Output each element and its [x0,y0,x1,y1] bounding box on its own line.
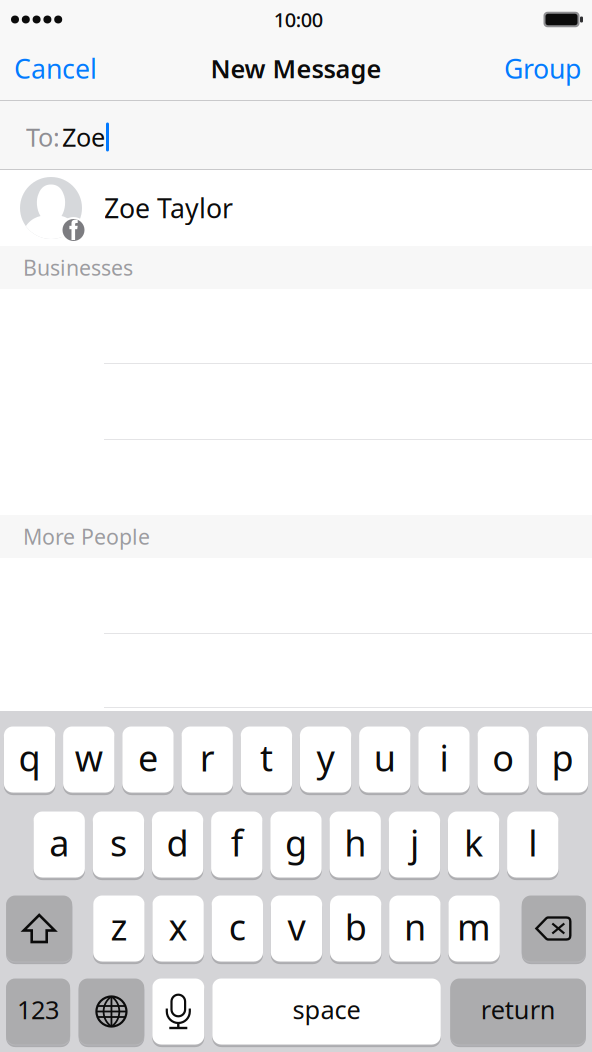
staticText: space [293,993,361,1026]
staticText: o [492,734,514,781]
button[interactable]: e [122,725,174,793]
button[interactable]: Dictation [152,977,204,1045]
staticText: i [439,734,448,781]
staticText: m [457,903,491,950]
button[interactable]: w [63,725,114,793]
button[interactable]: y [300,725,351,793]
button[interactable]: Next keyboard [79,977,144,1045]
staticText: f [231,819,243,866]
staticText: y [317,734,335,781]
staticText: 10:00 [274,6,323,33]
button[interactable]: Zoe Taylor [0,170,592,246]
staticText: e [138,734,158,781]
button[interactable]: Group [492,39,592,98]
button[interactable]: h [329,810,381,878]
staticText: s [110,819,127,866]
staticText: p [551,734,573,781]
staticText: u [374,734,396,781]
staticText: Zoe Taylor [104,190,233,226]
button[interactable]: l [507,810,558,878]
button[interactable]: u [359,725,410,793]
button[interactable]: q [4,725,55,793]
button[interactable]: p [537,725,588,793]
button[interactable]: Shift [6,894,72,962]
staticText: w [75,734,103,781]
button[interactable]: s [93,810,144,878]
button[interactable]: Delete [522,894,586,962]
button[interactable]: t [241,725,292,793]
button[interactable]: j [389,810,440,878]
staticText: b [345,903,367,950]
button[interactable]: z [93,894,145,962]
button[interactable]: k [448,810,499,878]
button[interactable]: i [418,725,470,793]
button[interactable]: Cancel [0,39,109,98]
staticText: l [528,819,537,866]
staticText: Businesses [23,253,133,282]
staticText: 123 [17,993,59,1026]
staticText: Cancel [14,51,97,86]
staticText: Zoe [62,120,105,154]
button[interactable]: a [33,810,85,878]
button[interactable]: space [212,977,441,1045]
staticText: j [410,819,419,866]
button[interactable]: d [152,810,203,878]
staticText: v [287,903,305,950]
staticText: k [464,819,483,866]
staticText: return [481,993,556,1026]
staticText: n [404,903,426,950]
staticText: q [19,734,41,781]
button[interactable]: f [211,810,262,878]
staticText: z [110,903,127,950]
button[interactable]: r [181,725,233,793]
staticText: r [200,734,215,781]
staticText: h [344,819,366,866]
staticText: c [229,903,246,950]
staticText: d [167,819,189,866]
staticText: New Message [210,52,381,85]
button[interactable]: g [270,810,322,878]
staticText: g [285,819,307,866]
button[interactable]: c [212,894,263,962]
button[interactable]: b [330,894,381,962]
staticText: a [49,819,69,866]
staticText: Group [504,51,581,86]
staticText: t [260,734,273,781]
staticText: To: [26,120,60,154]
button[interactable]: x [152,894,204,962]
button[interactable]: 123 [6,977,70,1045]
button[interactable]: o [477,725,529,793]
staticText: More People [23,522,150,551]
button[interactable]: n [389,894,441,962]
button[interactable]: v [271,894,322,962]
button[interactable]: return [450,977,586,1045]
staticText: x [169,903,188,950]
button[interactable]: m [448,894,500,962]
